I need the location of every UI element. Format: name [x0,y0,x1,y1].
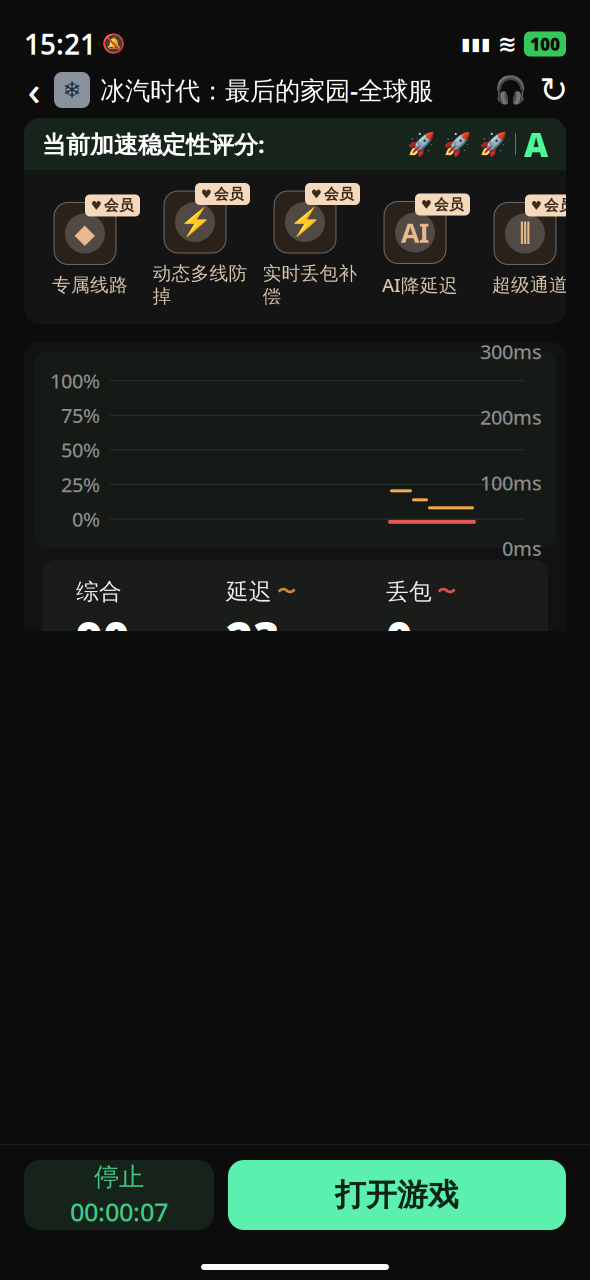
staticText: 100ms [480,469,542,496]
staticText: 75% [61,402,100,429]
staticText: 会员 [324,185,354,203]
staticText: 90 [76,608,130,668]
staticText: AI [401,215,429,250]
staticText: 0% [72,506,100,532]
staticText: 🚀 [443,131,471,157]
button[interactable]: Support [488,68,532,112]
staticText: 动态多线防掉 [152,262,247,308]
staticText: 打开游戏 [335,1176,459,1214]
staticText: 50% [61,437,100,463]
staticText: 200ms [480,404,542,430]
staticText: 停止 [94,1162,144,1193]
staticText: ❄ [62,77,81,103]
staticText: 实时丢包补偿 [262,262,357,308]
staticText: 超级通道 [492,273,568,296]
staticText: 丢包 [386,578,432,606]
staticText: ♥ [201,187,212,201]
staticText: 100 [530,32,560,55]
button[interactable]: 打开游戏 [228,1160,566,1230]
staticText: 🚀 [479,131,507,157]
button[interactable]: 停止 [24,1160,214,1230]
staticText: 15:21 [24,25,96,63]
staticText: 冰汽时代：最后的家园-全球服 [100,73,433,107]
staticText: 专属线路 [52,273,128,296]
staticText: ⦀ [519,220,531,246]
staticText: 会员 [214,185,244,203]
button[interactable]: ⚡ [150,182,250,308]
staticText: A [524,122,548,166]
button[interactable]: ⚡ [260,182,360,308]
staticText: ⚡ [288,207,321,237]
staticText: AI降延迟 [382,272,458,297]
staticText: ‹ [27,63,40,116]
staticText: 🚀 [407,131,435,157]
staticText: 会员 [104,196,134,214]
staticText: ◆ [74,218,95,249]
staticText: ⚡ [178,207,211,237]
button[interactable]: Refresh [532,68,576,112]
staticText: ♥ [421,198,432,211]
staticText: ▮▮▮ [461,34,491,54]
staticText: 300ms [480,338,542,365]
button[interactable]: ⦀ [480,193,580,296]
staticText: ↻ [539,70,568,110]
staticText: 00:00:07 [70,1195,168,1228]
button[interactable]: AI [370,192,470,297]
button[interactable]: Back [14,68,54,112]
staticText: 综合 [76,578,122,606]
staticText: 会员 [544,196,574,214]
staticText: ♥ [531,199,542,212]
button[interactable]: ❄ [54,72,433,108]
staticText: 会员 [434,195,464,213]
staticText: 🎧 [493,75,526,105]
staticText: ≋ [498,31,517,57]
staticText: 0ms [502,535,542,561]
staticText: 0 [386,608,413,668]
staticText: 100% [50,367,100,394]
staticText: 延迟 [226,578,272,606]
staticText: ♥ [311,187,322,201]
staticText: 🔕 [102,33,125,55]
staticText: 〜 [437,580,456,603]
staticText: 当前加速稳定性评分: [42,128,265,160]
staticText: 25% [61,471,100,498]
staticText: 〜 [277,580,296,603]
staticText: 23 [226,608,280,668]
staticText: ♥ [91,199,102,212]
button[interactable]: ◆ [40,193,140,296]
